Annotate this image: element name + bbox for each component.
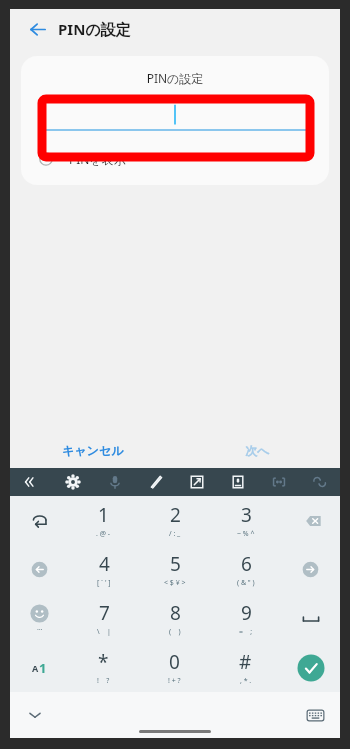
staticText: 3 bbox=[241, 502, 252, 528]
button[interactable]: Hide keyboard bbox=[20, 700, 50, 730]
other: Emoji bbox=[10, 594, 68, 643]
button[interactable]: 次へ bbox=[175, 432, 340, 468]
staticText: PINの設定 bbox=[21, 70, 329, 86]
staticText: . @ - bbox=[96, 529, 111, 539]
button[interactable]: Handwriting bbox=[135, 468, 176, 496]
other: Undo bbox=[10, 496, 68, 545]
button[interactable]: 9 bbox=[210, 594, 281, 643]
other: Enter bbox=[281, 643, 340, 692]
staticText: 1 bbox=[98, 502, 109, 528]
button[interactable]: Expand toolbar bbox=[10, 468, 52, 496]
button[interactable]: キャンセル bbox=[10, 432, 175, 468]
button[interactable]: # bbox=[210, 643, 281, 692]
staticText: , * . bbox=[240, 676, 252, 686]
staticText: キャンセル bbox=[62, 443, 124, 458]
button[interactable]: Enter bbox=[281, 643, 340, 692]
button[interactable]: Translate bbox=[258, 468, 299, 496]
staticText: 7 bbox=[99, 600, 110, 626]
button[interactable]: Resize keyboard bbox=[176, 468, 217, 496]
button[interactable]: 1 bbox=[68, 496, 139, 545]
staticText: ~ % ^ bbox=[237, 529, 255, 539]
other: Move cursor right bbox=[281, 545, 340, 594]
other: Move cursor left bbox=[10, 545, 68, 594]
staticText: = ; bbox=[239, 627, 253, 637]
button[interactable]: 2 bbox=[139, 496, 210, 545]
staticText: 0 bbox=[169, 649, 180, 675]
staticText: ( & " ) bbox=[237, 578, 255, 588]
button[interactable]: Change keyboard bbox=[300, 700, 330, 730]
staticText: # bbox=[239, 649, 252, 675]
staticText: 1 bbox=[39, 659, 47, 677]
staticText: PINの設定 bbox=[58, 19, 131, 39]
staticText: 5 bbox=[170, 551, 181, 577]
button[interactable] bbox=[41, 99, 309, 131]
staticText: 4 bbox=[99, 551, 110, 577]
button[interactable]: Voice input bbox=[94, 468, 135, 496]
staticText: 8 bbox=[170, 600, 181, 626]
staticText: ( ) bbox=[169, 627, 181, 637]
staticText: [ ` ' ] bbox=[97, 578, 111, 588]
staticText: 2 bbox=[170, 502, 181, 528]
button[interactable]: 4 bbox=[68, 545, 139, 594]
button[interactable]: 3 bbox=[210, 496, 281, 545]
staticText: \ | bbox=[97, 627, 111, 637]
button[interactable]: Move cursor left bbox=[10, 545, 68, 594]
button[interactable]: Undo bbox=[10, 496, 68, 545]
button[interactable]: Emoji bbox=[10, 594, 68, 643]
staticText: / : _ bbox=[169, 529, 181, 539]
staticText: ! + ? bbox=[168, 676, 181, 686]
button[interactable]: Sticker bbox=[299, 468, 340, 496]
staticText: 次へ bbox=[245, 443, 270, 458]
button[interactable]: Back bbox=[24, 16, 50, 42]
other: Space bbox=[281, 594, 340, 643]
staticText: … bbox=[37, 623, 43, 633]
staticText: 6 bbox=[241, 551, 252, 577]
other: Backspace bbox=[281, 496, 340, 545]
button[interactable]: PINを表示 bbox=[21, 143, 329, 175]
staticText: A bbox=[32, 662, 39, 674]
button[interactable]: Backspace bbox=[281, 496, 340, 545]
button[interactable]: 6 bbox=[210, 545, 281, 594]
button[interactable]: 8 bbox=[139, 594, 210, 643]
other: Switch input mode bbox=[10, 643, 68, 692]
button[interactable]: Space bbox=[281, 594, 340, 643]
staticText: ! ? bbox=[97, 676, 110, 686]
staticText: * bbox=[98, 649, 109, 675]
button[interactable]: Clipboard bbox=[217, 468, 258, 496]
button[interactable]: 5 bbox=[139, 545, 210, 594]
staticText: PINを表示 bbox=[69, 151, 126, 167]
staticText: < $ ¥ > bbox=[164, 578, 186, 588]
button[interactable]: Switch input mode bbox=[10, 643, 68, 692]
button[interactable]: Move cursor right bbox=[281, 545, 340, 594]
button[interactable]: 7 bbox=[68, 594, 139, 643]
button[interactable]: * bbox=[68, 643, 139, 692]
button[interactable]: Settings bbox=[52, 468, 94, 496]
staticText: 9 bbox=[241, 600, 252, 626]
button[interactable]: 0 bbox=[139, 643, 210, 692]
